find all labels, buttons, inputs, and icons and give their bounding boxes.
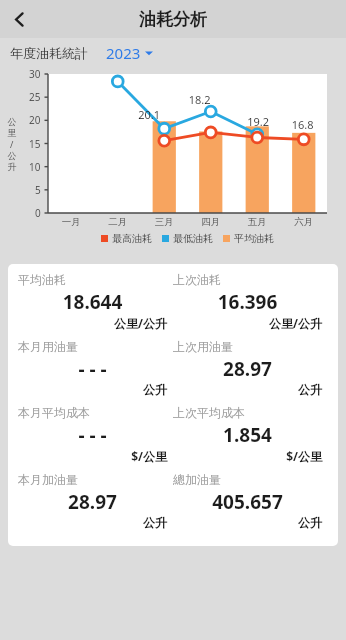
button[interactable]: 本月加油量 [18, 472, 173, 538]
staticText: - - - [18, 422, 167, 448]
staticText: 平均油耗 [18, 272, 66, 287]
staticText: 油耗分析 [139, 9, 207, 30]
staticText: 405.657 [173, 489, 322, 515]
staticText: 本月加油量 [18, 472, 78, 487]
button[interactable]: 本月平均成本 [18, 405, 173, 472]
staticText: 年度油耗統計 [10, 45, 88, 61]
staticText: 公升 [173, 382, 322, 397]
staticText: 公里/公升 [173, 315, 322, 331]
staticText: $/公里 [18, 448, 167, 464]
staticText: 公升 [18, 382, 167, 397]
staticText: 18.644 [18, 289, 167, 315]
button[interactable]: 總加油量 [173, 472, 328, 538]
staticText: 公升 [173, 515, 322, 530]
staticText: 28.97 [173, 356, 322, 382]
staticText: - - - [18, 356, 167, 382]
staticText: 28.97 [18, 489, 167, 515]
button[interactable]: 2023 [104, 41, 155, 65]
staticText: 上次平均成本 [173, 405, 245, 420]
staticText: 1.854 [173, 422, 322, 448]
staticText: 總加油量 [173, 472, 221, 487]
staticText: 2023 [106, 43, 141, 63]
staticText: 16.396 [173, 289, 322, 315]
button[interactable]: 上次油耗 [173, 272, 328, 339]
button[interactable]: Back [0, 0, 38, 38]
button[interactable]: 上次用油量 [173, 339, 328, 405]
staticText: 上次油耗 [173, 272, 221, 287]
staticText: 本月用油量 [18, 339, 78, 354]
button[interactable]: 本月用油量 [18, 339, 173, 405]
staticText: 上次用油量 [173, 339, 233, 354]
button[interactable]: 平均油耗 [18, 272, 173, 339]
staticText: 公里/公升 [18, 315, 167, 331]
button[interactable]: 上次平均成本 [173, 405, 328, 472]
staticText: $/公里 [173, 448, 322, 464]
staticText: 公升 [18, 515, 167, 530]
staticText: 本月平均成本 [18, 405, 90, 420]
